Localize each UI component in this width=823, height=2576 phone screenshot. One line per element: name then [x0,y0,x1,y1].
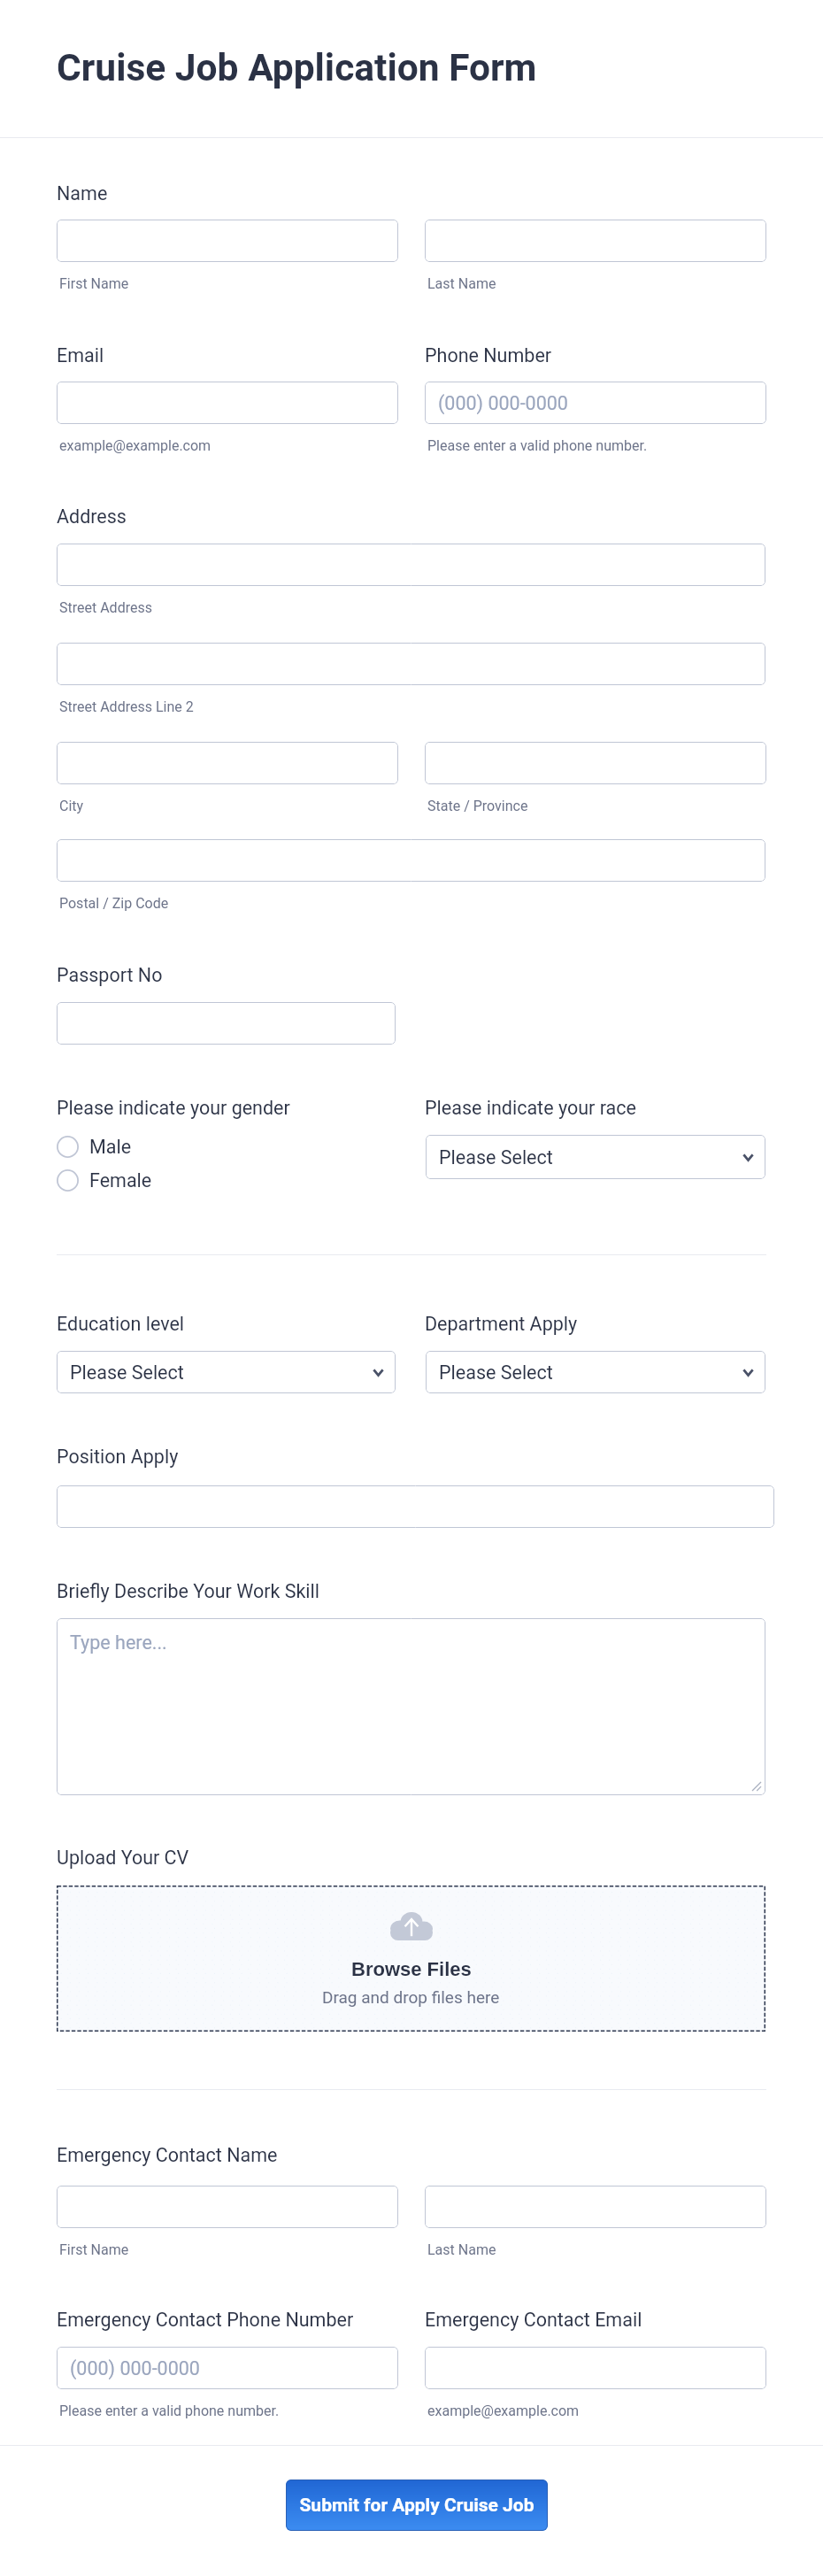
staticText: Browse Files [351,1958,472,1980]
staticText: Upload Your CV [57,1847,189,1869]
staticText: Department Apply [425,1313,578,1335]
button[interactable]: Please indicate your race [426,1135,765,1179]
staticText: Submit for Apply Cruise Job [299,2495,535,2517]
staticText: Please Select [70,1361,184,1384]
staticText: Please Select [439,1361,553,1384]
staticText: Male [89,1136,132,1158]
button[interactable]: State / Province [425,742,766,784]
staticText: Street Address [59,599,152,616]
button[interactable]: Emergency contact first name [57,2186,398,2228]
button[interactable]: Emergency contact last name [425,2186,766,2228]
staticText: Briefly Describe Your Work Skill [57,1580,320,1602]
button[interactable]: Submit for Apply Cruise Job [286,2480,548,2531]
staticText: Type here... [70,1631,167,1654]
staticText: Name [57,182,108,204]
staticText: Emergency Contact Name [57,2144,278,2166]
staticText: Emergency Contact Phone Number [57,2309,354,2331]
button[interactable]: Last Name [425,220,766,262]
staticText: example@example.com [59,437,212,454]
staticText: Position Apply [57,1446,179,1468]
staticText: Please indicate your race [425,1097,636,1119]
staticText: Please indicate your gender [57,1097,290,1119]
button[interactable]: Education level [57,1351,396,1393]
staticText: Last Name [427,275,496,292]
button[interactable]: Position Apply [57,1485,774,1528]
button[interactable]: Emergency Contact Phone Number [57,2347,398,2389]
button[interactable]: Street Address [57,544,765,586]
staticText: Please enter a valid phone number. [427,437,648,454]
button[interactable]: Passport No [57,1002,396,1045]
staticText: Street Address Line 2 [59,698,194,715]
staticText: Last Name [427,2241,496,2258]
staticText: Postal / Zip Code [59,895,169,912]
staticText: First Name [59,2241,129,2258]
staticText: Please enter a valid phone number. [59,2402,280,2419]
staticText: Education level [57,1313,185,1335]
button[interactable]: Phone Number [425,382,766,424]
button[interactable]: Email [57,382,398,424]
staticText: Address [57,505,127,528]
button[interactable]: Postal / Zip Code [57,839,765,882]
staticText: example@example.com [427,2402,580,2419]
staticText: Cruise Job Application Form [57,46,537,90]
button[interactable]: Female [57,1163,242,1197]
staticText: Please Select [439,1146,553,1168]
staticText: First Name [59,275,129,292]
staticText: City [59,798,84,814]
staticText: (000) 000-0000 [70,2357,200,2379]
button[interactable]: City [57,742,398,784]
button[interactable]: First Name [57,220,398,262]
button[interactable]: Browse files to upload your CV [57,1886,765,2032]
staticText: Female [89,1169,152,1192]
staticText: Phone Number [425,344,552,366]
staticText: Emergency Contact Email [425,2309,642,2331]
staticText: State / Province [427,798,528,814]
staticText: Drag and drop files here [322,1987,500,2007]
button[interactable]: Briefly Describe Your Work Skill [57,1618,765,1795]
button[interactable]: Male [57,1130,242,1163]
staticText: (000) 000-0000 [438,392,568,414]
button[interactable]: Department Apply [426,1351,765,1393]
button[interactable]: Emergency Contact Email [425,2347,766,2389]
button[interactable]: Street Address Line 2 [57,643,765,685]
staticText: Email [57,344,104,366]
staticText: Passport No [57,964,163,986]
